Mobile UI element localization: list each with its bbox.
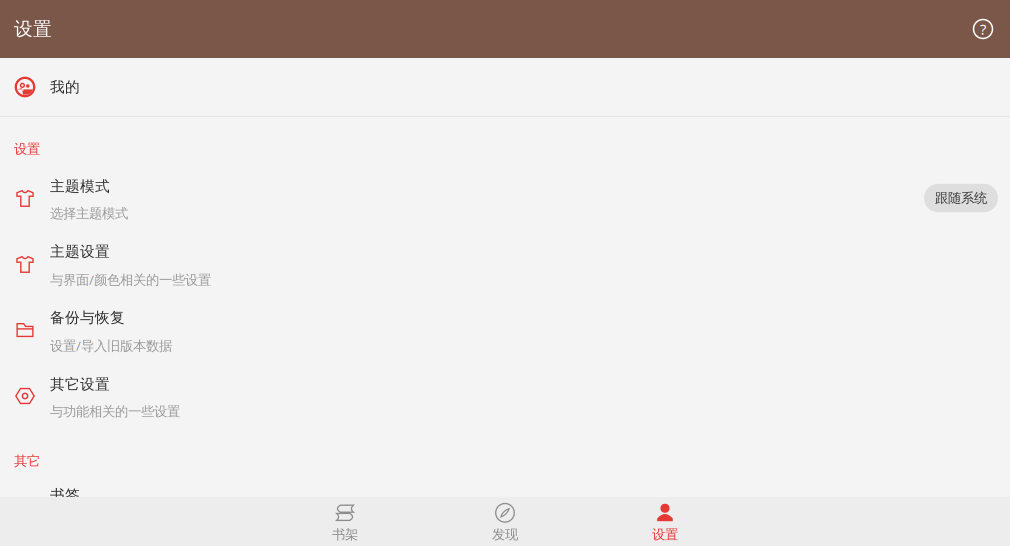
- button[interactable]: 其它设置: [0, 363, 1010, 429]
- staticText: 跟随系统: [935, 190, 987, 206]
- staticText: 主题设置: [50, 243, 110, 261]
- staticText: 设置: [652, 526, 678, 543]
- staticText: 其它: [14, 453, 40, 469]
- staticText: 我的: [50, 78, 80, 96]
- staticText: 设置: [14, 17, 52, 40]
- staticText: 其它设置: [50, 375, 110, 393]
- button[interactable]: 设置: [585, 497, 745, 546]
- button[interactable]: 发现: [425, 497, 585, 546]
- button[interactable]: Help: [956, 0, 1010, 58]
- staticText: 主题模式: [50, 177, 110, 195]
- staticText: 书架: [332, 526, 358, 543]
- staticText: 书签: [50, 486, 80, 504]
- button[interactable]: 书架: [265, 497, 425, 546]
- staticText: 与功能相关的一些设置: [50, 403, 180, 420]
- button[interactable]: 主题模式: [0, 165, 1010, 231]
- staticText: 设置: [14, 141, 40, 157]
- button[interactable]: 我的: [0, 58, 1010, 116]
- staticText: 与界面/颜色相关的一些设置: [50, 271, 211, 288]
- staticText: 备份与恢复: [50, 309, 125, 327]
- button[interactable]: 备份与恢复: [0, 297, 1010, 363]
- staticText: 设置/导入旧版本数据: [50, 337, 172, 354]
- staticText: 发现: [492, 526, 518, 543]
- staticText: 选择主题模式: [50, 205, 128, 222]
- staticText: ?: [980, 19, 986, 39]
- button[interactable]: 书签: [0, 477, 1010, 513]
- button[interactable]: 主题设置: [0, 231, 1010, 297]
